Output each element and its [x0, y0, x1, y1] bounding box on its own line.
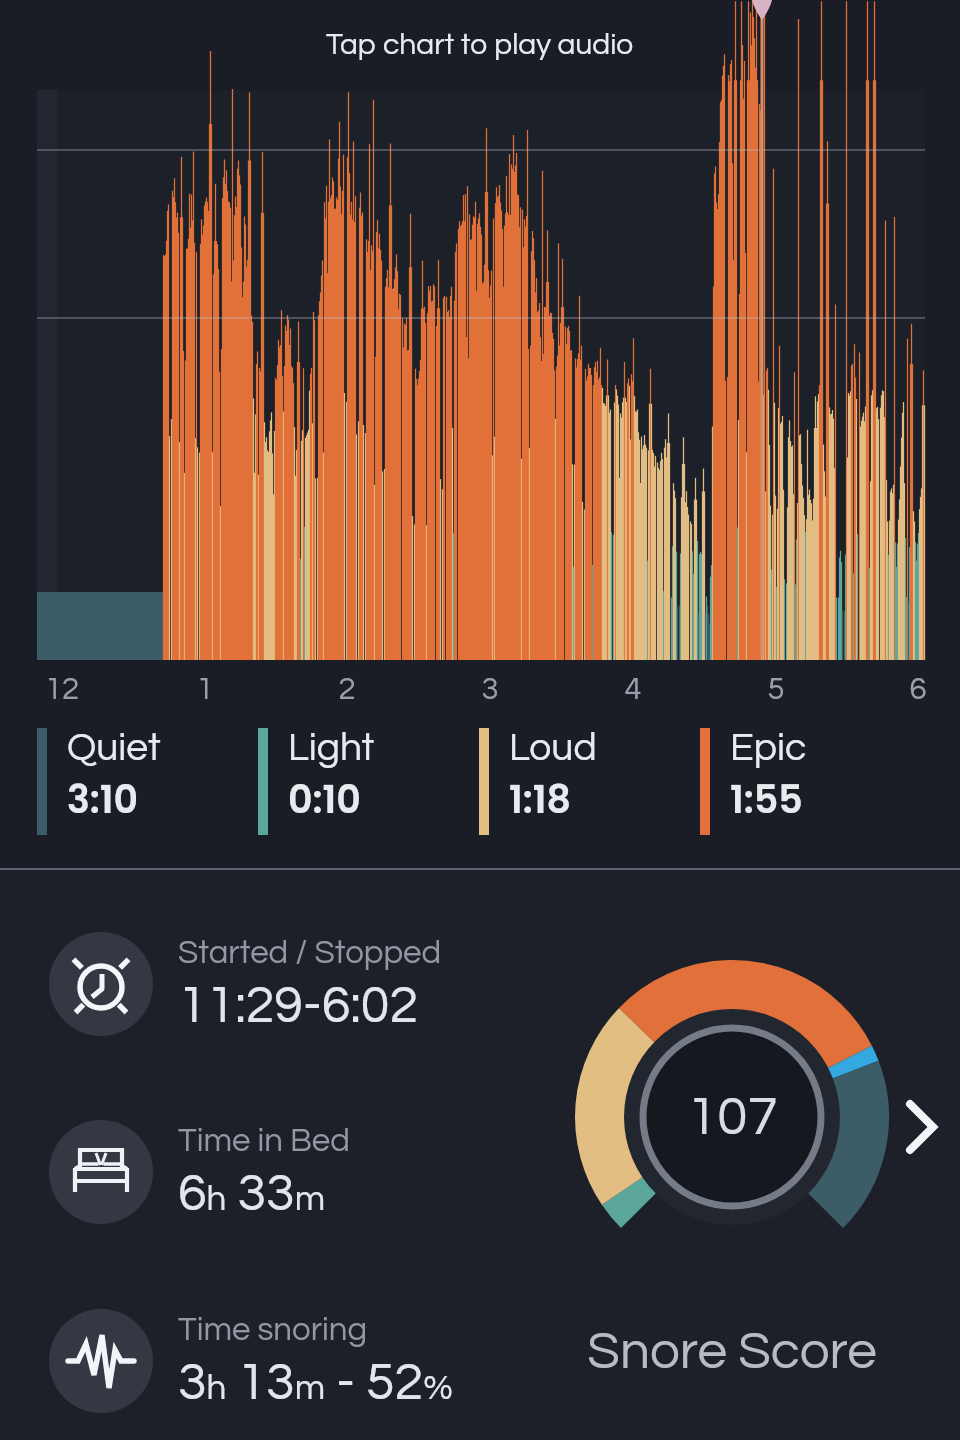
staticText: 1:55 [730, 773, 803, 826]
button[interactable]: More details [896, 1091, 948, 1143]
staticText: 2 [307, 674, 387, 706]
staticText: 4 [593, 674, 673, 706]
staticText: 3:10 [67, 773, 139, 826]
staticText: 11:29-6:02 [178, 979, 419, 1033]
staticText: Tap chart to play audio [326, 29, 634, 60]
staticText: 12 [22, 674, 102, 706]
staticText: Light [288, 728, 375, 768]
staticText: 3 [450, 674, 530, 706]
staticText: Time in Bed [178, 1124, 350, 1158]
button[interactable]: Loud [479, 728, 700, 835]
staticText: Time snoring [178, 1313, 368, 1347]
staticText: Started / Stopped [178, 936, 442, 970]
staticText: 6 [878, 674, 958, 706]
button[interactable]: Started / Stopped [0, 908, 960, 1060]
button[interactable]: Quiet [37, 728, 258, 835]
staticText: Snore Score [504, 1325, 960, 1380]
staticText: Epic [730, 728, 807, 768]
staticText: 6h 33m [178, 1167, 326, 1221]
staticText: 107 [687, 1089, 778, 1146]
staticText: 1:18 [509, 773, 571, 826]
button[interactable]: Snore Score [574, 959, 890, 1275]
button[interactable]: Time snoring [0, 1285, 960, 1437]
staticText: 5 [736, 674, 816, 706]
button[interactable]: Light [258, 728, 479, 835]
staticText: 3h 13m - 52% [178, 1356, 453, 1410]
staticText: Quiet [67, 728, 161, 768]
button[interactable]: Time in Bed [0, 1096, 960, 1248]
button[interactable]: Tap chart to play audio [0, 0, 960, 868]
button[interactable]: Epic [700, 728, 921, 835]
staticText: 1 [165, 674, 245, 706]
staticText: 0:10 [288, 773, 361, 826]
staticText: Loud [509, 728, 597, 768]
